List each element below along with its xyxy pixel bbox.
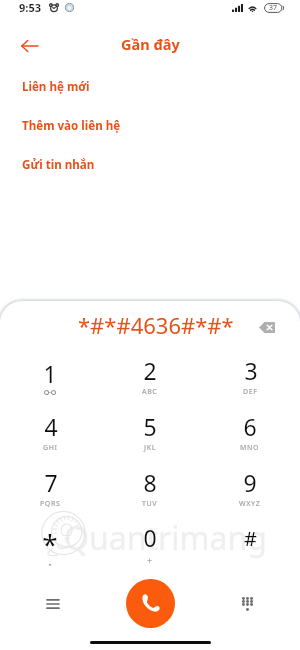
staticText: 2 bbox=[143, 355, 157, 386]
staticText: 9 bbox=[243, 467, 257, 498]
button[interactable]: Liên hệ mới bbox=[0, 67, 300, 106]
staticText: Thêm vào liên hệ bbox=[22, 118, 121, 134]
staticText: 6 bbox=[243, 411, 257, 442]
button[interactable]: 1 bbox=[0, 349, 100, 405]
button[interactable]: 3 bbox=[200, 349, 300, 405]
staticText: GHI bbox=[43, 443, 58, 453]
staticText: 0 bbox=[143, 522, 157, 553]
staticText: 7 bbox=[44, 467, 58, 498]
staticText: 8 bbox=[143, 467, 157, 498]
staticText: ABC bbox=[142, 387, 158, 397]
button[interactable]: 6 bbox=[200, 405, 300, 461]
button[interactable]: 2 bbox=[100, 349, 200, 405]
button[interactable]: Backspace bbox=[250, 310, 284, 344]
staticText: TUV bbox=[142, 499, 158, 509]
staticText: 3 bbox=[244, 355, 258, 386]
staticText: 37 bbox=[269, 3, 278, 13]
button[interactable]: Back bbox=[12, 29, 46, 63]
staticText: *#*#4636#*#* bbox=[78, 310, 234, 340]
button[interactable]: Thêm vào liên hệ bbox=[0, 106, 300, 145]
staticText: Quantrimang bbox=[64, 516, 267, 560]
button[interactable]: * bbox=[0, 517, 100, 573]
staticText: 1 bbox=[43, 358, 57, 389]
button[interactable]: 9 bbox=[200, 461, 300, 517]
staticText: JKL bbox=[144, 443, 156, 453]
button[interactable]: 0 bbox=[100, 517, 200, 573]
staticText: + bbox=[147, 554, 153, 566]
button[interactable]: Call bbox=[126, 579, 175, 628]
staticText: 4 bbox=[44, 411, 58, 442]
staticText: 5 bbox=[143, 411, 157, 442]
staticText: Gần đây bbox=[121, 34, 180, 54]
staticText: # bbox=[244, 525, 257, 552]
button[interactable]: 8 bbox=[100, 461, 200, 517]
staticText: Liên hệ mới bbox=[22, 79, 90, 95]
button[interactable]: Menu bbox=[36, 587, 70, 621]
staticText: 9:53 bbox=[19, 0, 41, 15]
button[interactable]: 4 bbox=[0, 405, 100, 461]
button[interactable]: 7 bbox=[0, 461, 100, 517]
button[interactable]: Dialpad bbox=[230, 587, 264, 621]
staticText: DEF bbox=[243, 387, 258, 397]
staticText: Gửi tin nhắn bbox=[22, 157, 95, 173]
staticText: MNO bbox=[240, 443, 260, 453]
staticText: * bbox=[42, 525, 58, 563]
button[interactable]: Gửi tin nhắn bbox=[0, 145, 300, 184]
staticText: PQRS bbox=[40, 499, 61, 509]
button[interactable]: 5 bbox=[100, 405, 200, 461]
staticText: WXYZ bbox=[239, 499, 261, 509]
button[interactable]: # bbox=[200, 517, 300, 573]
